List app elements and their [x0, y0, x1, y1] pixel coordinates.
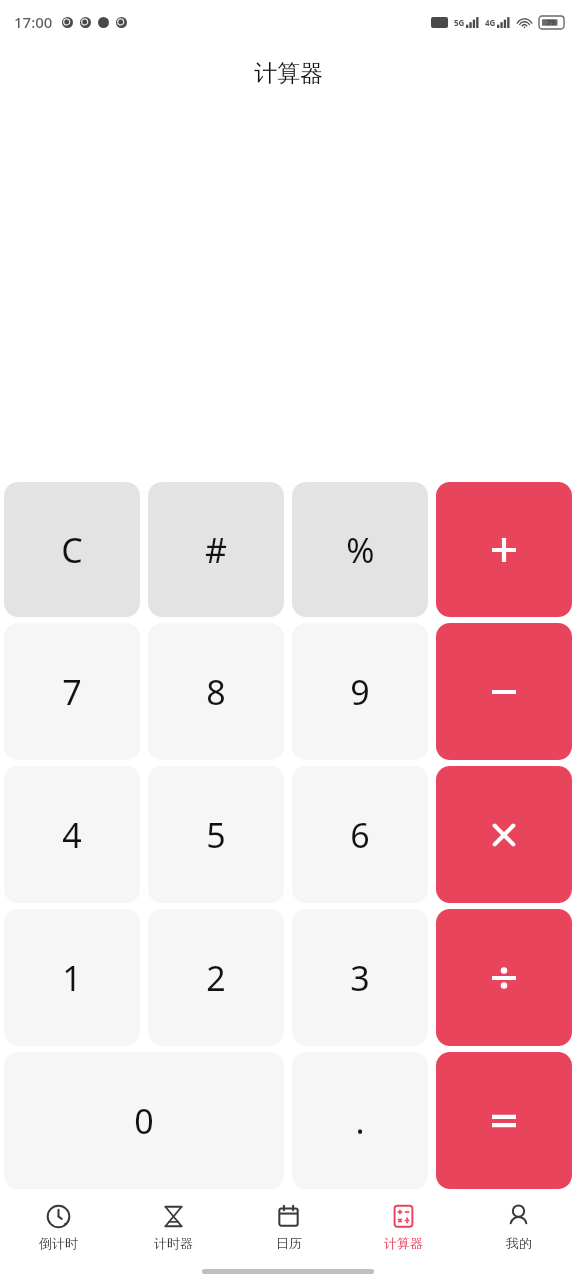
staticText: . — [355, 1098, 365, 1144]
button[interactable]: 0 — [4, 1052, 284, 1189]
other: Multiply — [484, 815, 524, 855]
button[interactable]: C — [4, 482, 140, 617]
staticText: 1 — [62, 955, 82, 1001]
staticText: 我的 — [506, 1235, 532, 1251]
staticText: 2 — [206, 955, 226, 1001]
button[interactable]: 9 — [292, 623, 428, 760]
button[interactable]: 5 — [148, 766, 284, 903]
button[interactable]: Plus — [436, 482, 572, 617]
button[interactable]: 6 — [292, 766, 428, 903]
staticText: 6 — [350, 812, 370, 858]
button[interactable]: 倒计时 — [0, 1192, 116, 1262]
button[interactable]: 2 — [148, 909, 284, 1046]
staticText: 17:00 — [14, 12, 53, 32]
button[interactable]: 日历 — [231, 1192, 346, 1262]
button[interactable]: # — [148, 482, 284, 617]
staticText: 5 — [206, 812, 226, 858]
button[interactable]: . — [292, 1052, 428, 1189]
button[interactable]: 4 — [4, 766, 140, 903]
button[interactable]: 1 — [4, 909, 140, 1046]
other: Plus — [484, 530, 524, 570]
button[interactable]: Minus — [436, 623, 572, 760]
button[interactable]: 3 — [292, 909, 428, 1046]
staticText: 计算器 — [254, 59, 323, 88]
button[interactable]: 8 — [148, 623, 284, 760]
staticText: 4 — [62, 812, 82, 858]
button[interactable]: Divide — [436, 909, 572, 1046]
staticText: % — [346, 527, 375, 573]
staticText: 3 — [350, 955, 370, 1001]
button[interactable]: 计时器 — [116, 1192, 231, 1262]
staticText: 5G — [454, 17, 465, 28]
button[interactable]: Multiply — [436, 766, 572, 903]
staticText: 79 — [547, 18, 556, 28]
button[interactable]: % — [292, 482, 428, 617]
staticText: 倒计时 — [39, 1235, 78, 1251]
staticText: C — [61, 527, 83, 573]
staticText: 7 — [62, 669, 82, 715]
staticText: 8 — [206, 669, 226, 715]
staticText: 计时器 — [154, 1235, 193, 1251]
staticText: 4G — [485, 17, 496, 28]
staticText: 日历 — [276, 1235, 302, 1251]
other: Divide — [484, 958, 524, 998]
other: Equals — [484, 1101, 524, 1141]
button[interactable]: 7 — [4, 623, 140, 760]
staticText: 9 — [350, 669, 370, 715]
button[interactable]: 我的 — [461, 1192, 576, 1262]
staticText: # — [205, 527, 227, 573]
button[interactable]: 计算器 — [346, 1192, 461, 1262]
staticText: 0 — [134, 1098, 154, 1144]
staticText: 计算器 — [384, 1235, 423, 1251]
button[interactable]: Equals — [436, 1052, 572, 1189]
other: Minus — [484, 672, 524, 712]
